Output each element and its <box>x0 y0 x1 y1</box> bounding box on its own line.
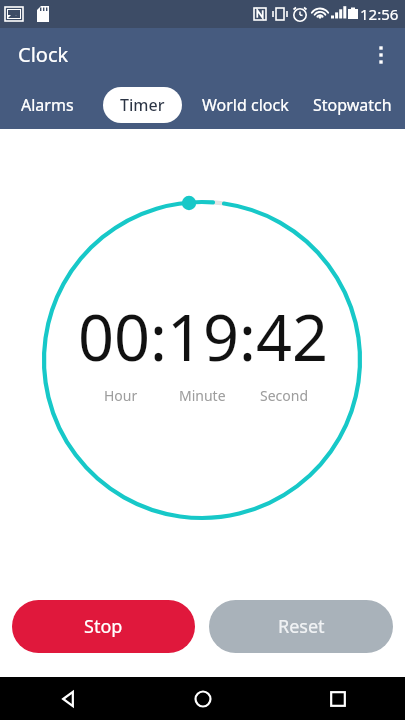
staticText: Timer <box>120 94 165 116</box>
button[interactable]: Stop <box>12 600 195 653</box>
staticText: Second <box>260 386 309 405</box>
staticText: Clock <box>18 41 69 68</box>
button[interactable]: World clock <box>190 81 300 129</box>
button[interactable]: Recent apps <box>270 677 405 720</box>
staticText: Minute <box>179 386 226 405</box>
button[interactable]: Stopwatch <box>300 81 405 129</box>
staticText: Reset <box>278 614 325 639</box>
button[interactable]: Alarms <box>0 81 95 129</box>
staticText: Stop <box>84 614 123 639</box>
staticText: 00:19:42 <box>78 294 328 380</box>
button[interactable]: Back <box>0 677 135 720</box>
button[interactable]: More options <box>357 31 405 79</box>
button[interactable]: Timer <box>95 81 190 129</box>
staticText: Alarms <box>21 94 74 116</box>
button[interactable]: Reset <box>209 600 393 653</box>
staticText: World clock <box>202 94 289 116</box>
staticText: Hour <box>104 386 138 405</box>
staticText: 12:56 <box>360 4 399 24</box>
button[interactable]: Home <box>135 677 270 720</box>
staticText: Stopwatch <box>313 94 392 116</box>
